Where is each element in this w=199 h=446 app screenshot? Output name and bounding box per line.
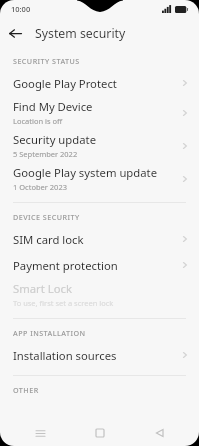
button[interactable]: Back bbox=[0, 18, 30, 48]
staticText: Google Play Protect bbox=[13, 76, 117, 91]
button[interactable]: Security update bbox=[0, 129, 199, 162]
staticText: SECURITY STATUS bbox=[13, 56, 80, 66]
button[interactable]: Home bbox=[80, 420, 120, 446]
staticText: Installation sources bbox=[13, 348, 117, 363]
staticText: Payment protection bbox=[13, 258, 118, 273]
button[interactable]: Recent apps bbox=[20, 420, 60, 446]
staticText: 1 October 2023 bbox=[13, 182, 67, 192]
staticText: 5 September 2022 bbox=[13, 149, 78, 159]
staticText: Security update bbox=[13, 132, 96, 147]
staticText: 10:00 bbox=[11, 4, 31, 14]
button[interactable]: Installation sources bbox=[0, 342, 199, 368]
button[interactable]: Payment protection bbox=[0, 252, 199, 278]
staticText: Location is off bbox=[13, 116, 63, 126]
button[interactable]: Back bbox=[139, 420, 179, 446]
staticText: SIM card lock bbox=[13, 232, 84, 247]
button[interactable]: Google Play Protect bbox=[0, 70, 199, 96]
staticText: OTHER bbox=[13, 385, 39, 395]
button[interactable]: SIM card lock bbox=[0, 226, 199, 252]
staticText: Smart Lock bbox=[13, 281, 72, 296]
staticText: APP INSTALLATION bbox=[13, 328, 86, 338]
staticText: System security bbox=[35, 25, 126, 42]
button[interactable]: Find My Device bbox=[0, 96, 199, 129]
staticText: DEVICE SECURITY bbox=[13, 212, 80, 222]
staticText: To use, first set a screen lock bbox=[13, 298, 114, 308]
staticText: Find My Device bbox=[13, 99, 93, 114]
button[interactable]: Google Play system update bbox=[0, 162, 199, 195]
staticText: Google Play system update bbox=[13, 165, 158, 180]
button: Smart Lock bbox=[0, 278, 199, 311]
